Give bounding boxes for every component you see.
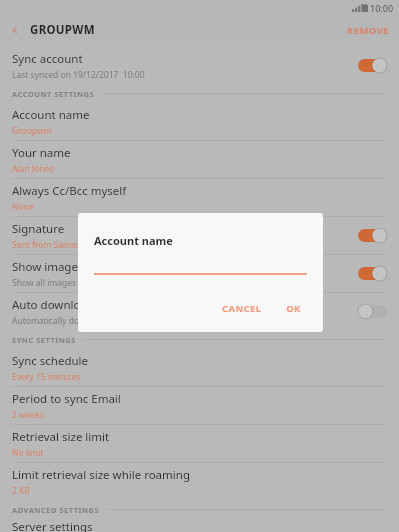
button[interactable]: Toggle on xyxy=(358,58,387,73)
staticText: Last synced on 19/12/2017 10:00 xyxy=(12,69,145,81)
staticText: No limit xyxy=(12,447,44,459)
staticText: REMOVE xyxy=(347,24,389,37)
staticText: Period to sync Email xyxy=(12,391,121,407)
staticText: Alan Jones xyxy=(12,163,54,175)
staticText: Signature xyxy=(12,221,65,237)
button[interactable]: Always Cc/Bcc myself xyxy=(0,179,399,216)
staticText: CANCEL xyxy=(222,302,262,315)
button[interactable]: Auto download attachments xyxy=(0,293,399,330)
staticText: Account name xyxy=(12,107,90,123)
staticText: Retrieval size limit xyxy=(12,429,110,445)
button[interactable]: Sync schedule xyxy=(0,349,399,386)
staticText: Sent from Samsung Mobile xyxy=(12,239,121,251)
button[interactable]: Account name xyxy=(0,103,399,140)
staticText: ACCOUNT SETTINGS xyxy=(12,89,95,99)
button[interactable]: Limit retrieval size while roaming xyxy=(0,463,399,500)
staticText: Every 15 minutes xyxy=(12,371,81,383)
staticText: ADVANCED SETTINGS xyxy=(12,505,100,515)
button[interactable]: Toggle on xyxy=(358,228,387,243)
staticText: GROUPWM xyxy=(30,22,95,38)
button[interactable]: Period to sync Email xyxy=(0,387,399,424)
staticText: SYNC SETTINGS xyxy=(12,335,76,345)
button[interactable]: CANCEL xyxy=(214,297,270,320)
button[interactable]: Your name xyxy=(0,141,399,178)
button[interactable]: Toggle off xyxy=(358,304,387,319)
button[interactable]: Retrieval size limit xyxy=(0,425,399,462)
staticText: OK xyxy=(286,302,301,315)
staticText: Account name xyxy=(94,233,173,248)
button[interactable]: Sync account xyxy=(0,47,399,84)
staticText: Show all images in emails xyxy=(12,277,114,289)
button[interactable]: REMOVE xyxy=(337,18,399,43)
staticText: Limit retrieval size while roaming xyxy=(12,467,190,483)
staticText: Sync account xyxy=(12,51,83,67)
staticText: Server settings xyxy=(12,519,93,532)
staticText: Automatically download... xyxy=(12,315,115,327)
button[interactable]: Signature xyxy=(0,217,399,254)
staticText: 10:00 xyxy=(370,2,394,14)
button[interactable]: Toggle on xyxy=(358,266,387,281)
button[interactable]: Show images xyxy=(0,255,399,292)
staticText: Always Cc/Bcc myself xyxy=(12,183,127,199)
staticText: Groupwm xyxy=(12,125,52,137)
button[interactable]: Navigate up xyxy=(0,16,30,44)
staticText: Your name xyxy=(12,145,71,161)
button[interactable]: OK xyxy=(278,297,309,320)
staticText: 2 weeks xyxy=(12,409,44,421)
staticText: Sync schedule xyxy=(12,353,89,369)
button[interactable]: Server settings xyxy=(0,519,399,532)
staticText: Show images xyxy=(12,259,84,275)
staticText: None xyxy=(12,201,34,213)
staticText: Auto download attachments xyxy=(12,297,165,313)
staticText: 2 KB xyxy=(12,485,30,497)
